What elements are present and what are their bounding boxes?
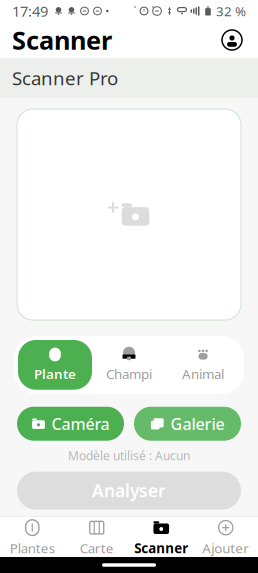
staticText: Carte — [80, 539, 114, 557]
staticText: Caméra — [51, 413, 109, 434]
staticText: Ajouter — [202, 539, 249, 557]
button[interactable]: Plante — [18, 340, 92, 390]
staticText: Champi — [106, 365, 152, 383]
button[interactable]: Carte — [64, 512, 129, 562]
staticText: 32 % — [216, 2, 246, 20]
button[interactable]: Analyser — [17, 472, 241, 510]
staticText: Plante — [34, 365, 76, 383]
staticText: Scanner — [12, 23, 112, 57]
staticText: Galerie — [170, 413, 224, 434]
staticText: Plantes — [10, 539, 55, 557]
button[interactable]: Account — [216, 24, 248, 56]
staticText: Animal — [182, 365, 224, 383]
staticText: 17:49 — [12, 1, 48, 21]
staticText: Analyser — [92, 479, 166, 502]
button[interactable]: Scanner — [129, 512, 193, 562]
button[interactable]: Ajouter — [193, 512, 258, 562]
button[interactable]: Galerie — [134, 407, 241, 441]
button[interactable]: Animal — [166, 340, 240, 390]
button[interactable]: Caméra — [17, 407, 124, 441]
staticText: Scanner — [134, 539, 188, 557]
staticText: Modèle utilisé : Aucun — [68, 448, 190, 464]
staticText: Scanner Pro — [12, 66, 118, 90]
button[interactable]: Plantes — [0, 512, 64, 562]
button[interactable]: Champi — [92, 340, 166, 390]
